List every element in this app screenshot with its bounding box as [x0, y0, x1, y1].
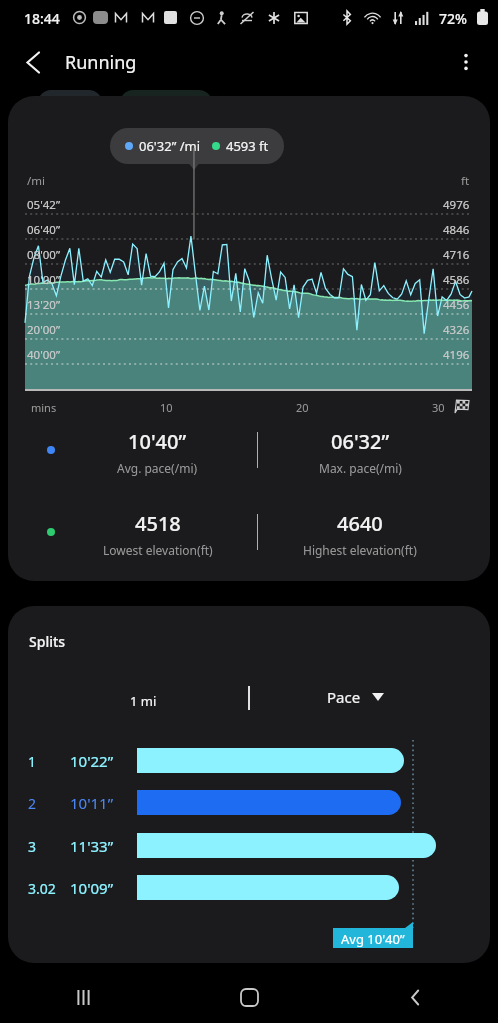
staticText: 1	[28, 752, 37, 771]
button[interactable]	[38, 90, 102, 116]
staticText: 20'00”	[27, 322, 61, 338]
staticText: 06'32” /mi	[139, 137, 201, 155]
button[interactable]: 3	[8, 825, 490, 866]
button[interactable]: 1	[8, 740, 490, 781]
staticText: 11'33”	[70, 836, 114, 856]
staticText: Max. pace(/mi)	[319, 460, 402, 476]
staticText: 4976	[443, 197, 470, 213]
staticText: 06'40”	[27, 222, 61, 238]
staticText: 10'00”	[27, 272, 61, 288]
staticText: 2	[28, 794, 37, 813]
staticText: 4196	[443, 347, 470, 363]
staticText: 1 mi	[130, 692, 157, 710]
button[interactable]: 4518	[8, 503, 490, 561]
staticText: 4518	[135, 510, 181, 537]
staticText: Lowest elevation(ft)	[103, 542, 213, 558]
button[interactable]	[120, 90, 212, 116]
staticText: 40'00”	[27, 347, 61, 363]
staticText: 13'20”	[27, 297, 61, 313]
staticText: Avg. pace(/mi)	[117, 460, 198, 476]
staticText: 4640	[337, 510, 383, 537]
staticText: 30	[432, 400, 445, 415]
staticText: 08'00”	[27, 247, 61, 263]
staticText: 10'40”	[128, 428, 187, 455]
staticText: 4716	[443, 247, 470, 263]
staticText: 4586	[443, 272, 470, 288]
staticText: 4456	[443, 297, 470, 313]
staticText: 20	[296, 400, 309, 415]
staticText: 4326	[443, 322, 470, 338]
staticText: 10'09”	[70, 878, 114, 898]
staticText: 3	[28, 837, 37, 856]
staticText: 4593 ft	[226, 137, 269, 155]
staticText: 18:44	[24, 9, 60, 28]
button[interactable]: Back	[332, 971, 498, 1023]
staticText: 10	[160, 400, 173, 415]
staticText: Highest elevation(ft)	[303, 542, 417, 558]
staticText: 3.02	[28, 879, 56, 898]
button[interactable]: 3.02	[8, 867, 490, 908]
button[interactable]: Home	[166, 971, 332, 1023]
staticText: 72%	[439, 9, 467, 28]
button[interactable]: Pace	[327, 687, 384, 707]
staticText: 10'11”	[70, 793, 114, 813]
staticText: Running	[65, 50, 137, 75]
staticText: /mi	[27, 173, 45, 189]
staticText: 4846	[443, 222, 470, 238]
staticText: 06'32”	[331, 428, 390, 455]
staticText: Splits	[29, 632, 66, 651]
button[interactable]: 2	[8, 782, 490, 823]
staticText: Avg 10'40”	[341, 930, 405, 948]
button[interactable]: More options	[438, 34, 494, 90]
button[interactable]: Back	[0, 34, 62, 90]
staticText: Pace	[327, 687, 361, 707]
staticText: mins	[31, 400, 57, 415]
button[interactable]: 10'40”	[8, 421, 490, 479]
button[interactable]: Recents	[0, 971, 166, 1023]
staticText: 10'22”	[70, 751, 114, 771]
staticText: ft	[461, 173, 470, 189]
button[interactable]: Avg 10'40”	[333, 922, 413, 948]
staticText: 05'42”	[27, 197, 61, 213]
